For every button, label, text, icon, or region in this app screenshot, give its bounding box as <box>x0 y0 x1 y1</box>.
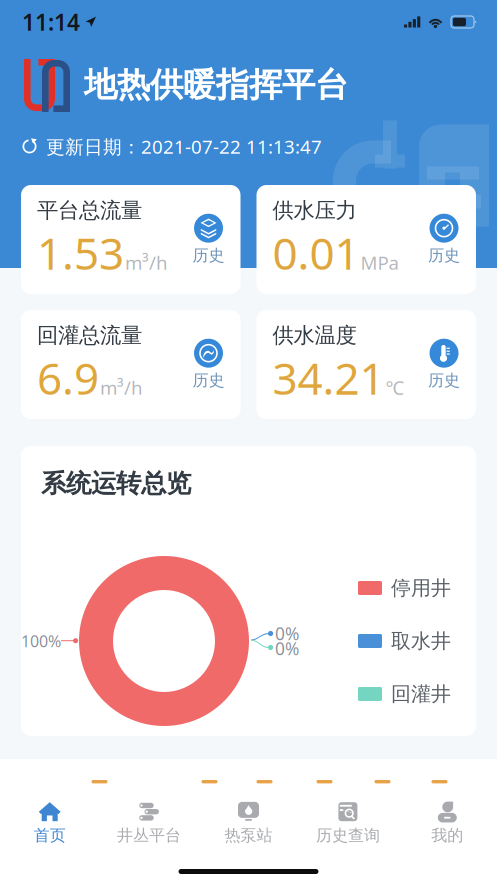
staticText: MPa <box>360 250 398 275</box>
staticText: 首页 <box>34 826 66 845</box>
button[interactable]: 历史 供水温度 <box>422 339 466 390</box>
staticText: 6.9 <box>37 348 99 407</box>
staticText: ℃ <box>385 375 404 400</box>
staticText: 我的 <box>431 826 463 845</box>
staticText: 井丛平台 <box>117 826 181 845</box>
staticText: 历史 <box>192 246 224 265</box>
button[interactable]: 历史 回灌总流量 <box>186 339 230 390</box>
staticText: 0% <box>275 637 299 660</box>
staticText: 停用井 <box>391 576 451 600</box>
button[interactable]: 历史 平台总流量 <box>186 214 230 265</box>
staticText: 取水井 <box>391 629 451 653</box>
staticText: 供水温度 <box>272 322 356 348</box>
staticText: 34.21 <box>272 348 384 407</box>
staticText: 更新日期：2021-07-22 11:13:47 <box>46 134 322 159</box>
staticText: m³/h <box>125 250 168 275</box>
staticText: 地热供暖指挥平台 <box>84 64 348 105</box>
staticText: 历史查询 <box>316 826 380 845</box>
staticText: 历史 <box>428 371 460 390</box>
staticText: 回灌总流量 <box>37 322 142 348</box>
staticText: 历史 <box>428 246 460 265</box>
staticText: 系统运转总览 <box>41 468 191 499</box>
staticText: 平台总流量 <box>37 197 142 223</box>
button[interactable]: 井丛平台 <box>99 795 199 849</box>
button[interactable]: 历史查询 <box>298 795 398 849</box>
button[interactable]: 首页 <box>0 795 99 849</box>
staticText: 1.53 <box>37 223 124 282</box>
staticText: 热泵站 <box>224 826 272 845</box>
staticText: 100% <box>21 630 61 652</box>
staticText: m³/h <box>100 375 143 400</box>
staticText: 历史 <box>192 371 224 390</box>
staticText: 0% <box>275 622 299 645</box>
staticText: 回灌井 <box>391 682 451 706</box>
button[interactable]: 热泵站 <box>199 795 298 849</box>
staticText: 11:14 <box>22 7 80 37</box>
staticText: 0.01 <box>272 223 359 282</box>
button[interactable]: 我的 <box>398 795 497 849</box>
staticText: 供水压力 <box>272 197 356 223</box>
button[interactable]: 历史 供水压力 <box>422 214 466 265</box>
